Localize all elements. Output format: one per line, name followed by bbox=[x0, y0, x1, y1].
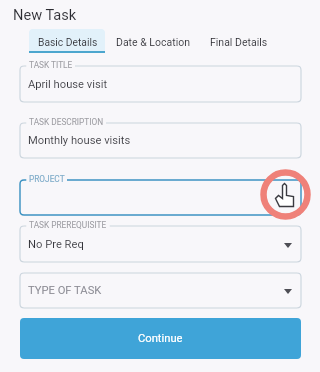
staticText: TASK PREREQUISITE bbox=[29, 220, 107, 230]
staticText: Monthly house visits bbox=[28, 134, 131, 147]
button[interactable]: TYPE OF TASK bbox=[20, 273, 301, 308]
staticText: PROJECT bbox=[29, 174, 65, 184]
button[interactable]: April house visit bbox=[20, 66, 301, 102]
staticText: Final Details bbox=[210, 36, 268, 48]
staticText: TASK DESCRIPTION bbox=[29, 117, 104, 127]
button[interactable]: PROJECT bbox=[20, 180, 301, 215]
staticText: New Task bbox=[13, 6, 77, 23]
button[interactable]: Final Details bbox=[202, 29, 276, 53]
other: Tap Project field bbox=[259, 168, 312, 221]
staticText: April house visit bbox=[28, 78, 108, 91]
button[interactable]: Basic Details bbox=[29, 29, 105, 53]
button[interactable]: No Pre Req bbox=[20, 226, 301, 262]
button[interactable]: Continue bbox=[20, 318, 301, 359]
staticText: Basic Details bbox=[38, 36, 98, 48]
staticText: No Pre Req bbox=[28, 238, 84, 251]
staticText: Date & Location bbox=[116, 36, 190, 48]
staticText: TYPE OF TASK bbox=[28, 284, 102, 297]
staticText: TASK TITLE bbox=[29, 60, 73, 70]
button[interactable]: Monthly house visits bbox=[20, 123, 301, 158]
staticText: Continue bbox=[138, 332, 183, 345]
button[interactable]: Date & Location bbox=[108, 29, 198, 53]
